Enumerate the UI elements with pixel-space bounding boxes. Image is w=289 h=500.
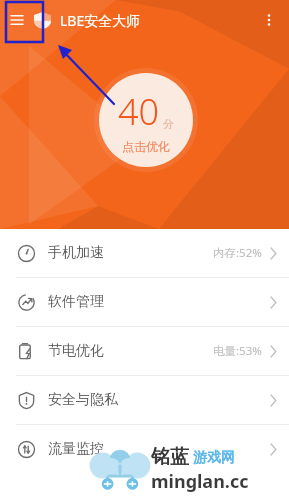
button[interactable]: 安全与隐私 xyxy=(0,376,289,424)
button[interactable]: 流量监控 xyxy=(0,425,289,473)
staticText: 软件管理 xyxy=(48,293,104,311)
staticText: 游戏网 xyxy=(193,449,235,467)
staticText: 安全与隐私 xyxy=(48,391,118,409)
staticText: 手机加速 xyxy=(48,244,104,262)
staticText: 电量:53% xyxy=(213,343,262,359)
staticText: 流量监控 xyxy=(48,440,104,458)
button[interactable]: 40 xyxy=(99,73,193,167)
button[interactable]: 软件管理 xyxy=(0,278,289,326)
staticText: 40 xyxy=(118,87,160,136)
staticText: 铭蓝 xyxy=(151,445,189,469)
staticText: 节电优化 xyxy=(48,342,104,360)
staticText: LBE安全大师 xyxy=(60,11,141,30)
button[interactable]: More options xyxy=(255,6,283,34)
staticText: 点击优化 xyxy=(122,139,170,154)
button[interactable]: 手机加速 xyxy=(0,229,289,277)
button[interactable]: Menu xyxy=(6,9,28,31)
button[interactable]: App logo xyxy=(30,8,54,32)
staticText: 分 xyxy=(163,117,174,131)
staticText: minglan.cc xyxy=(151,469,249,494)
staticText: 内存:52% xyxy=(213,245,262,261)
button[interactable]: 节电优化 xyxy=(0,327,289,375)
